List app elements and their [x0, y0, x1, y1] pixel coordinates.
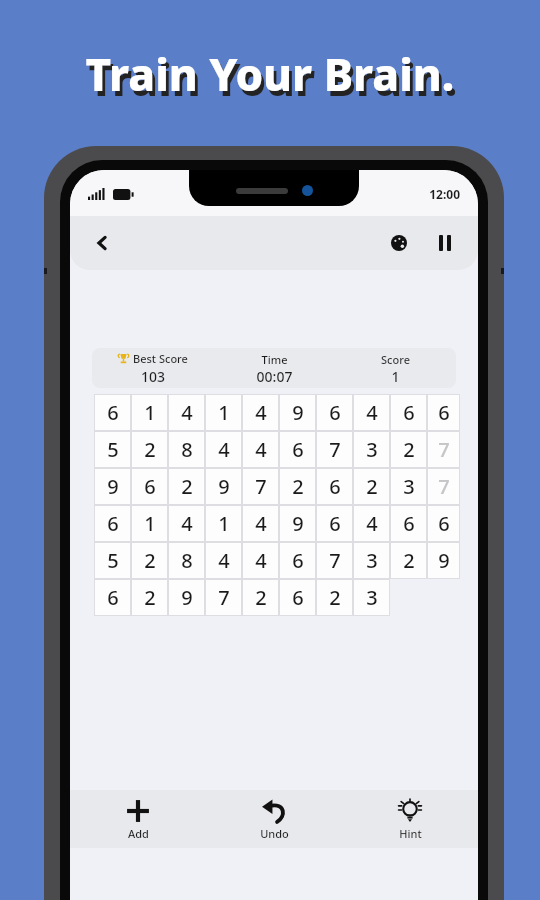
button[interactable]: 4 — [206, 432, 241, 467]
button[interactable]: 4 — [243, 395, 278, 430]
button[interactable]: 6 — [317, 506, 352, 541]
staticText: 2 — [144, 584, 156, 611]
button[interactable]: 9 — [280, 395, 315, 430]
button[interactable]: 2 — [132, 580, 167, 615]
staticText: 9 — [218, 473, 230, 500]
staticText: 2 — [403, 547, 415, 574]
button[interactable]: 3 — [354, 432, 389, 467]
button[interactable]: 7 — [206, 580, 241, 615]
button[interactable]: 6 — [317, 469, 352, 504]
button[interactable]: 4 — [243, 506, 278, 541]
button[interactable]: 4 — [243, 432, 278, 467]
staticText: 2 — [403, 436, 415, 463]
staticText: Time — [214, 352, 335, 367]
button[interactable]: 7 — [317, 543, 352, 578]
button[interactable]: 8 — [169, 543, 204, 578]
button[interactable]: 2 — [354, 469, 389, 504]
staticText: 9 — [292, 399, 304, 426]
button[interactable]: 1 — [206, 506, 241, 541]
staticText: 4 — [366, 510, 378, 537]
button[interactable]: 4 — [243, 543, 278, 578]
button[interactable]: Undo — [206, 794, 342, 845]
staticText: 4 — [255, 399, 267, 426]
button[interactable]: 6 — [280, 580, 315, 615]
staticText: 8 — [181, 547, 193, 574]
staticText: 9 — [438, 547, 450, 574]
staticText: Hint — [399, 826, 422, 841]
button[interactable]: Back — [82, 223, 122, 263]
button[interactable]: 2 — [280, 469, 315, 504]
button[interactable]: 6 — [132, 469, 167, 504]
button[interactable]: 3 — [391, 469, 426, 504]
button[interactable]: 6 — [428, 395, 459, 430]
staticText: 2 — [181, 473, 193, 500]
staticText: 7 — [438, 473, 450, 500]
button[interactable]: 2 — [317, 580, 352, 615]
staticText: 6 — [292, 584, 304, 611]
button[interactable]: 6 — [317, 395, 352, 430]
button[interactable]: 4 — [206, 543, 241, 578]
button[interactable]: 2 — [243, 580, 278, 615]
button[interactable]: 2 — [391, 432, 426, 467]
staticText: 6 — [438, 399, 450, 426]
button[interactable]: 2 — [132, 432, 167, 467]
button[interactable]: 9 — [206, 469, 241, 504]
button[interactable]: 9 — [428, 543, 459, 578]
button[interactable]: 9 — [95, 469, 130, 504]
button[interactable]: 9 — [169, 580, 204, 615]
button[interactable]: Pause — [426, 224, 464, 262]
staticText: 5 — [107, 436, 119, 463]
button[interactable]: 6 — [280, 543, 315, 578]
staticText: 4 — [218, 436, 230, 463]
button[interactable]: 2 — [391, 543, 426, 578]
staticText: Train Your Brain. — [3, 49, 540, 109]
button[interactable]: 4 — [354, 395, 389, 430]
staticText: Train Your Brain. — [0, 44, 540, 104]
staticText: 2 — [255, 584, 267, 611]
button[interactable]: 2 — [132, 543, 167, 578]
button[interactable]: 8 — [169, 432, 204, 467]
staticText: 6 — [403, 510, 415, 537]
button[interactable]: 7 — [428, 469, 459, 504]
button[interactable]: 9 — [280, 506, 315, 541]
button[interactable]: 1 — [132, 395, 167, 430]
staticText: 7 — [329, 547, 341, 574]
button[interactable]: Hint — [342, 794, 478, 845]
staticText: 1 — [144, 510, 156, 537]
button[interactable]: 4 — [169, 395, 204, 430]
staticText: 3 — [366, 436, 378, 463]
button[interactable]: Theme — [380, 224, 418, 262]
button[interactable]: 6 — [428, 506, 459, 541]
button[interactable]: 2 — [169, 469, 204, 504]
staticText: 9 — [107, 473, 119, 500]
button[interactable]: 4 — [169, 506, 204, 541]
button[interactable]: 1 — [206, 395, 241, 430]
staticText: 6 — [144, 473, 156, 500]
button[interactable]: 4 — [354, 506, 389, 541]
staticText: 6 — [292, 436, 304, 463]
button[interactable]: 7 — [428, 432, 459, 467]
button[interactable]: 1 — [132, 506, 167, 541]
button[interactable]: 5 — [95, 543, 130, 578]
staticText: 6 — [329, 399, 341, 426]
staticText: 3 — [403, 473, 415, 500]
button[interactable]: 3 — [354, 580, 389, 615]
staticText: 6 — [329, 510, 341, 537]
staticText: 4 — [366, 399, 378, 426]
staticText: 4 — [181, 399, 193, 426]
button[interactable]: 7 — [317, 432, 352, 467]
button[interactable]: 6 — [391, 395, 426, 430]
staticText: 6 — [107, 584, 119, 611]
staticText: 5 — [107, 547, 119, 574]
button[interactable]: 6 — [95, 506, 130, 541]
staticText: 6 — [403, 399, 415, 426]
button[interactable]: 6 — [280, 432, 315, 467]
button[interactable]: 6 — [391, 506, 426, 541]
button[interactable]: 6 — [95, 580, 130, 615]
staticText: 103 — [92, 367, 214, 386]
button[interactable]: 3 — [354, 543, 389, 578]
button[interactable]: 7 — [243, 469, 278, 504]
button[interactable]: Add — [70, 794, 206, 845]
button[interactable]: 6 — [95, 395, 130, 430]
button[interactable]: 5 — [95, 432, 130, 467]
